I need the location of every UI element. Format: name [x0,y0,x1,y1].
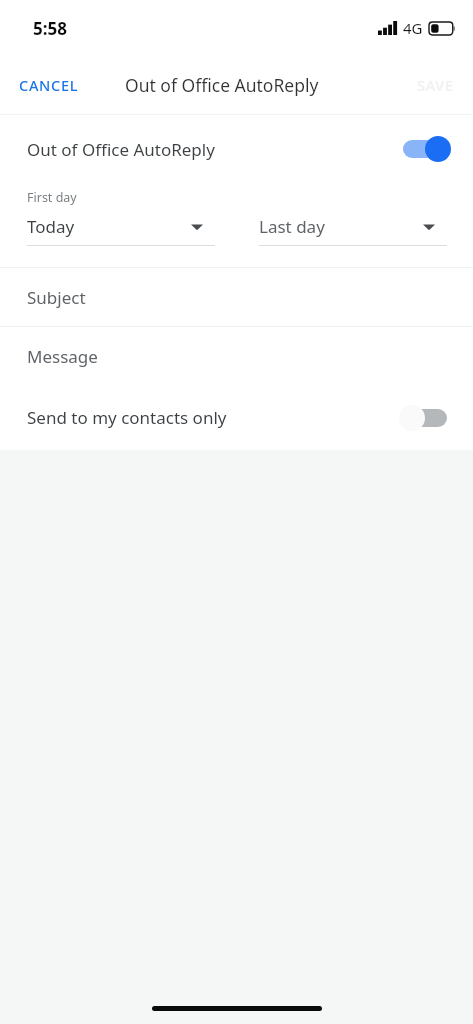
button[interactable]: Message [0,327,473,385]
staticText: Message [27,345,98,368]
button[interactable]: Last day [259,215,447,246]
button[interactable]: CANCEL [0,65,98,105]
button[interactable]: Send to my contacts only toggle, off [399,402,451,434]
button[interactable]: Today [27,215,215,246]
staticText: Send to my contacts only [27,406,227,429]
staticText: 4G [403,18,423,38]
button[interactable]: Out of Office AutoReply toggle, on [399,133,451,165]
staticText: Out of Office AutoReply [125,73,319,97]
staticText: Last day [259,215,325,238]
button[interactable]: SAVE [398,65,473,105]
staticText: 5:58 [33,17,67,40]
button[interactable]: Subject [0,268,473,326]
staticText: First day [27,189,77,206]
staticText: CANCEL [19,75,79,95]
button[interactable]: Out of Office AutoReply [0,115,473,183]
button[interactable]: Send to my contacts only [0,385,473,450]
staticText: Subject [27,286,86,309]
staticText: SAVE [417,75,454,95]
staticText: Today [27,215,75,238]
staticText: Out of Office AutoReply [27,138,215,161]
